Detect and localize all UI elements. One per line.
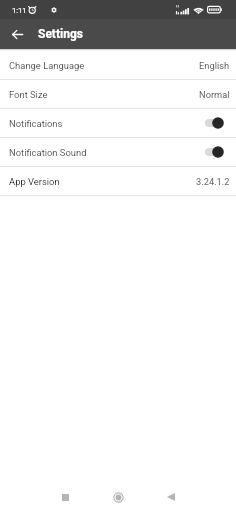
button[interactable]: Back — [0, 19, 34, 49]
staticText: Change Language — [9, 60, 85, 71]
staticText: 3.24.1.2 — [196, 176, 230, 187]
staticText: Notification Sound — [9, 147, 87, 158]
button[interactable]: Font Size — [0, 80, 236, 108]
staticText: Font Size — [9, 89, 48, 100]
button[interactable]: Change Language — [0, 51, 236, 79]
staticText: Notifications — [9, 118, 63, 129]
staticText: English — [199, 60, 230, 71]
button[interactable]: Back — [157, 483, 185, 511]
button[interactable]: App Version — [0, 167, 236, 195]
staticText: App Version — [9, 176, 60, 187]
button[interactable]: Notification Sound — [0, 138, 236, 166]
staticText: Normal — [199, 89, 230, 100]
button[interactable]: Recent apps — [51, 483, 79, 511]
staticText: Settings — [38, 27, 83, 41]
staticText: 1:11 — [12, 6, 27, 15]
button[interactable]: Notifications — [0, 109, 236, 137]
button[interactable]: Home — [104, 483, 132, 511]
